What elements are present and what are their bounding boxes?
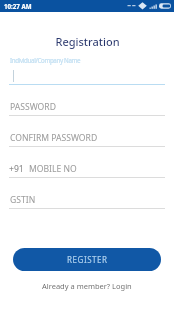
other: Status icons	[126, 0, 174, 12]
button[interactable]: GSTIN	[9, 188, 165, 208]
button[interactable]: REGISTER	[13, 248, 161, 271]
button[interactable]: CONFIRM PASSWORD	[9, 126, 165, 146]
staticText: GSTIN	[10, 194, 36, 206]
button[interactable]: Individual/Company Name	[9, 55, 165, 84]
staticText: Registration	[55, 34, 120, 49]
button[interactable]: PASSWORD	[9, 95, 165, 115]
button[interactable]: Already a member? Login	[0, 279, 174, 293]
button[interactable]: +91	[9, 157, 165, 177]
staticText: PASSWORD	[10, 101, 56, 113]
staticText: +91	[9, 163, 24, 175]
staticText: Individual/Company Name	[10, 56, 81, 64]
staticText: CONFIRM PASSWORD	[10, 132, 98, 144]
staticText: REGISTER	[67, 254, 108, 265]
staticText: Already a member? Login	[42, 281, 132, 291]
staticText: 10:27 AM	[4, 2, 32, 10]
staticText: MOBILE NO	[29, 163, 77, 175]
